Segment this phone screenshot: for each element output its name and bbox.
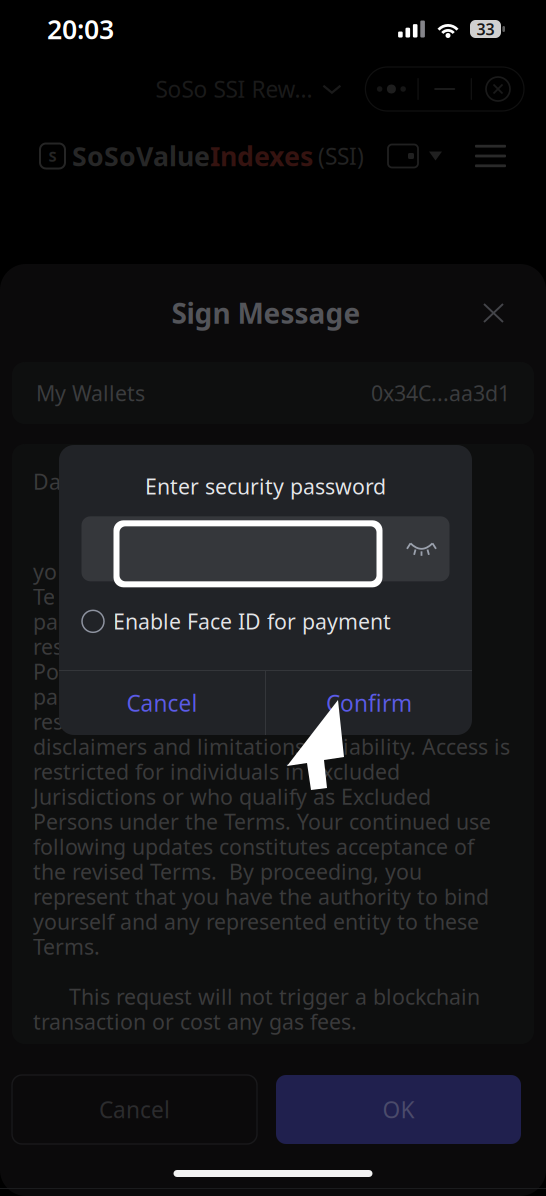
staticText: res	[33, 632, 63, 661]
button[interactable]: Wallet	[388, 144, 418, 167]
button[interactable]: Select network	[429, 151, 442, 160]
staticText: Po	[33, 657, 59, 686]
staticText: My Wallets	[36, 379, 145, 407]
staticText: res	[33, 707, 63, 736]
staticText: disclaimers and limitations of liability…	[33, 732, 510, 761]
staticText: Sign Message	[171, 294, 360, 332]
button[interactable]: Cancel	[12, 1075, 257, 1144]
staticText: pa	[33, 682, 58, 711]
staticText: yourself and any represented entity to t…	[33, 907, 479, 936]
staticText: pa	[33, 607, 58, 636]
button[interactable]: Menu	[475, 145, 506, 167]
staticText: Persons under the Terms. Your continued …	[33, 807, 491, 836]
button[interactable]: Minimize	[419, 68, 471, 110]
staticText: SoSoValue	[72, 138, 210, 174]
staticText: S	[48, 146, 56, 166]
staticText: Terms.	[33, 932, 100, 961]
staticText: 20:03	[47, 11, 114, 47]
button[interactable]: Close	[472, 68, 524, 110]
staticText: Enable Face ID for payment	[113, 607, 391, 635]
staticText: restricted for individuals in Excluded	[33, 757, 400, 786]
staticText: Jurisdictions or who qualify as Excluded	[33, 782, 431, 811]
button[interactable]: SoSo SSI Rew...	[149, 67, 347, 111]
staticText: 0x34C...aa3d1	[371, 379, 510, 407]
staticText: represent that you have the authority to…	[33, 882, 489, 911]
staticText: the revised Terms. By proceeding, you	[33, 857, 422, 886]
staticText: Indexes	[210, 138, 313, 174]
staticText: yo	[33, 557, 57, 586]
button[interactable]: OK	[276, 1075, 521, 1144]
staticText: Cancel	[99, 1094, 170, 1124]
staticText: SoSo SSI Rew...	[155, 74, 312, 104]
staticText: (SSI)	[318, 141, 364, 171]
staticText: Enter security password	[145, 472, 386, 500]
staticText: This request will not trigger a blockcha…	[33, 982, 480, 1011]
staticText: transaction or cost any gas fees.	[33, 1007, 357, 1036]
button[interactable]: Close	[470, 290, 517, 336]
staticText: Cancel	[126, 688, 197, 718]
button[interactable]: Cancel	[59, 671, 265, 735]
button[interactable]: More	[365, 68, 417, 110]
button[interactable]: Show password	[394, 542, 448, 556]
staticText: 33	[476, 18, 494, 40]
staticText: following updates constitutes acceptance…	[33, 832, 474, 861]
staticText: Te	[33, 582, 55, 611]
button[interactable]: Enable Face ID for payment	[59, 602, 472, 640]
staticText: OK	[382, 1094, 414, 1124]
button[interactable]: Confirm	[266, 671, 472, 735]
staticText: Da	[33, 467, 61, 496]
staticText: Confirm	[326, 688, 412, 718]
